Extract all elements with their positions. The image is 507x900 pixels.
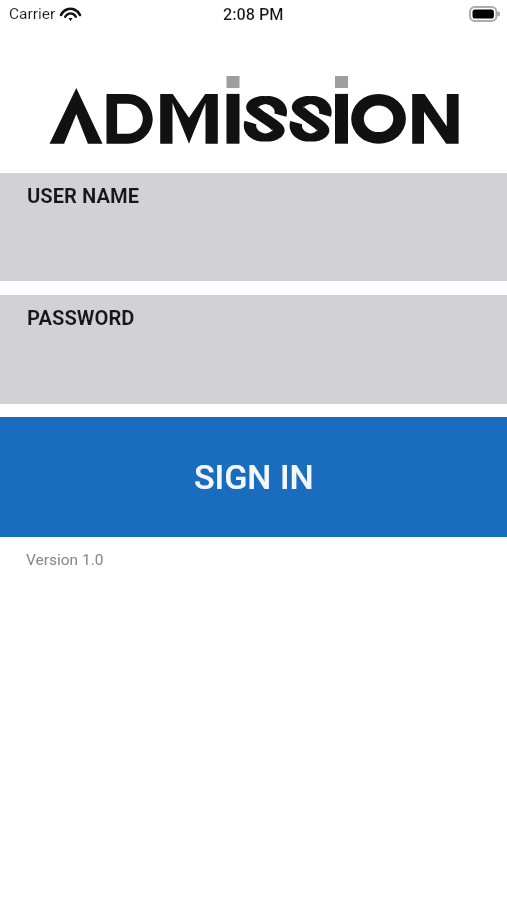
button[interactable]: PASSWORD xyxy=(0,295,507,404)
staticText: USER NAME xyxy=(27,184,140,208)
staticText: Carrier xyxy=(9,5,56,23)
staticText: SIGN IN xyxy=(194,457,314,497)
other: Admission xyxy=(0,27,507,173)
staticText: 2:08 PM xyxy=(223,5,284,24)
button[interactable]: USER NAME xyxy=(0,173,507,281)
other: Wi-Fi xyxy=(61,8,80,21)
other: Battery xyxy=(470,7,500,21)
staticText: PASSWORD xyxy=(27,306,135,330)
staticText: Version 1.0 xyxy=(26,551,104,569)
button[interactable]: SIGN IN xyxy=(0,417,507,537)
